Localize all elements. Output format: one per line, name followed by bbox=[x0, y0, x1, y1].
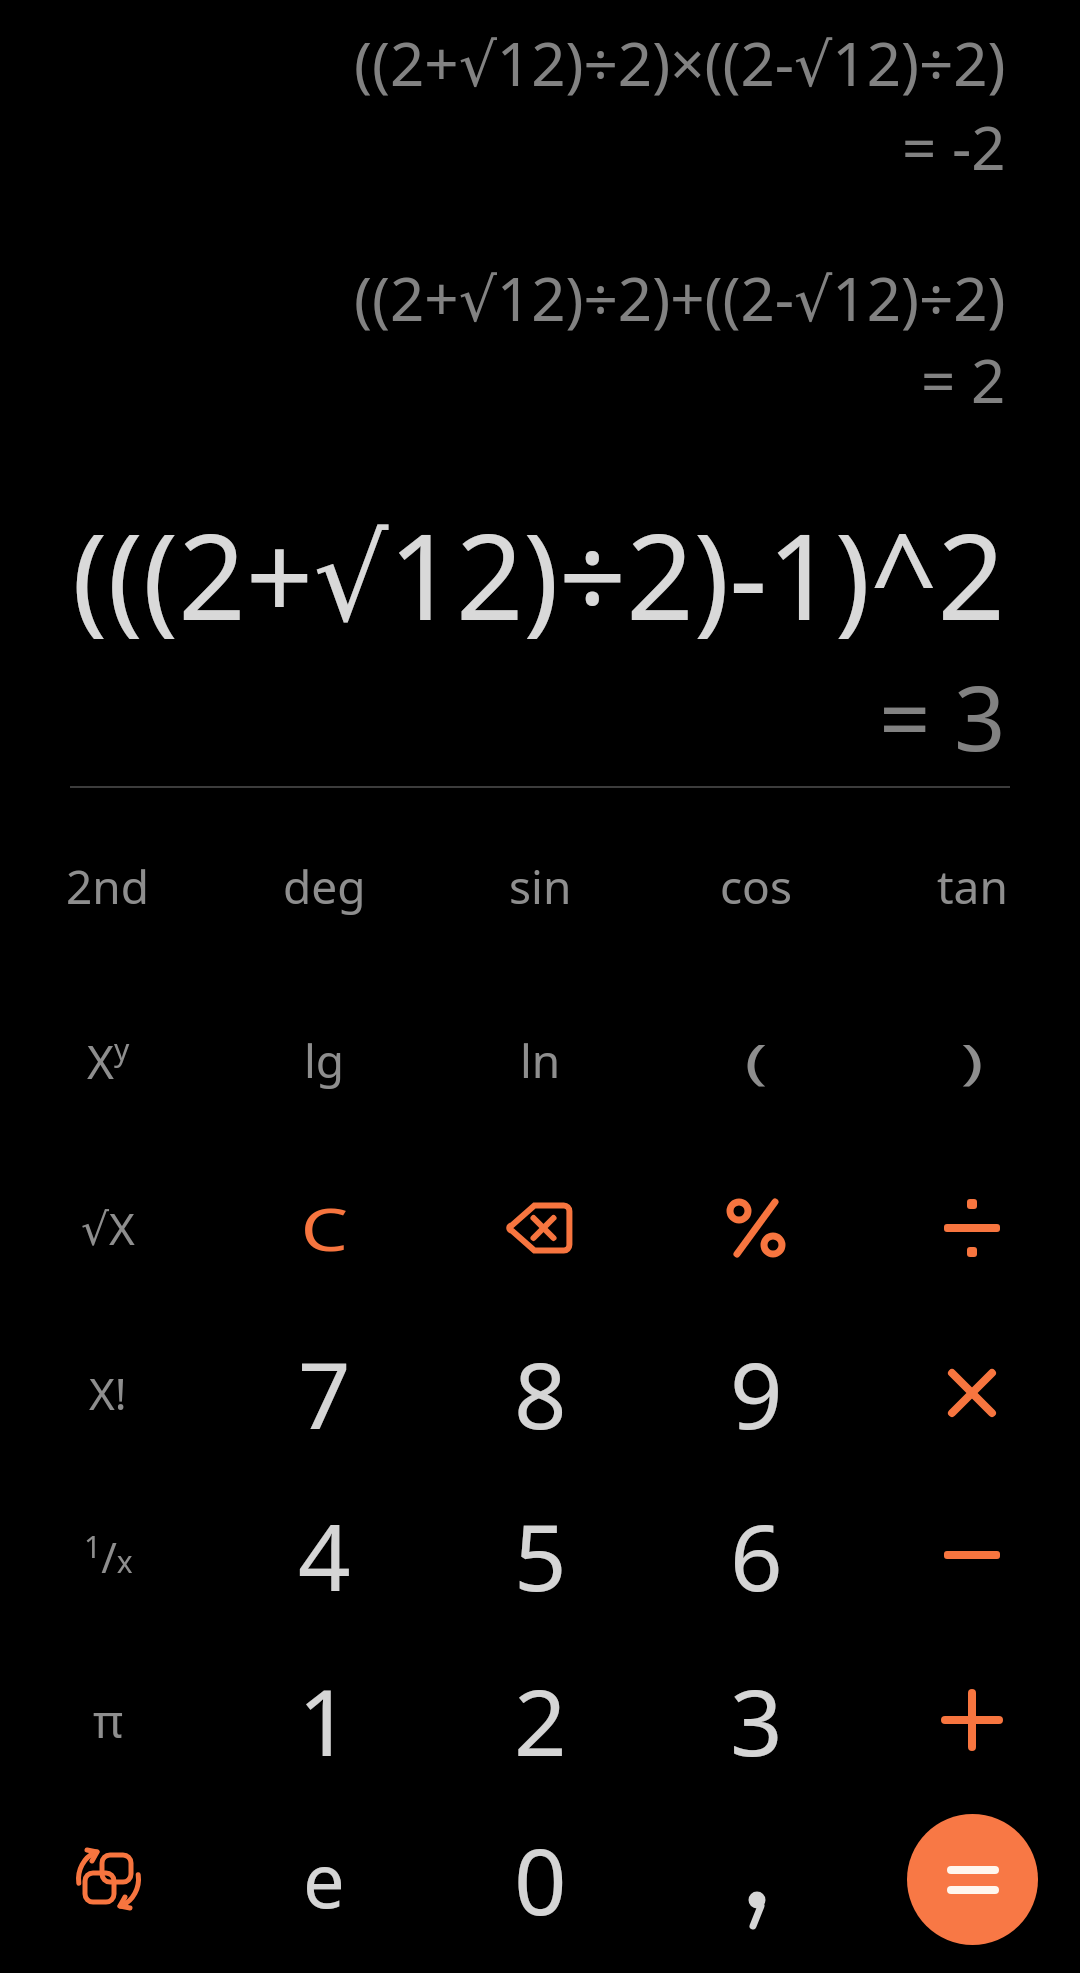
staticText: C bbox=[300, 1189, 349, 1268]
staticText: 6 bbox=[730, 1493, 783, 1618]
button[interactable]: tan bbox=[864, 802, 1080, 970]
staticText: 2 bbox=[514, 1658, 567, 1783]
staticText: ( bbox=[744, 1028, 768, 1093]
staticText: (((2+√12)÷2)-1)^2 bbox=[72, 494, 1006, 655]
button[interactable]: 3 bbox=[648, 1636, 864, 1804]
staticText: 1 bbox=[298, 1658, 351, 1783]
button[interactable]: e bbox=[216, 1795, 432, 1963]
staticText: 7 bbox=[298, 1331, 351, 1456]
button[interactable]: ) bbox=[864, 976, 1080, 1144]
button[interactable] bbox=[864, 1144, 1080, 1312]
staticText: 9 bbox=[730, 1331, 783, 1456]
button[interactable]: Xy bbox=[0, 976, 216, 1144]
button[interactable]: 2 bbox=[432, 1636, 648, 1804]
button[interactable]: 7 bbox=[216, 1309, 432, 1477]
staticText: ln bbox=[520, 1029, 561, 1092]
staticText: tan bbox=[937, 855, 1008, 918]
staticText: cos bbox=[720, 855, 792, 918]
button[interactable]: π bbox=[0, 1636, 216, 1804]
button[interactable]: 2nd bbox=[0, 802, 216, 970]
button[interactable] bbox=[0, 1795, 216, 1963]
button[interactable]: 9 bbox=[648, 1309, 864, 1477]
staticText: 3 bbox=[730, 1658, 783, 1783]
staticText: ) bbox=[960, 1028, 984, 1093]
button[interactable] bbox=[864, 1309, 1080, 1477]
staticText: 4 bbox=[298, 1493, 351, 1618]
staticText: = -2 bbox=[902, 106, 1006, 188]
staticText: ((2+√12)÷2)×((2-√12)÷2) bbox=[354, 22, 1006, 104]
button[interactable] bbox=[648, 1144, 864, 1312]
button[interactable] bbox=[907, 1814, 1038, 1945]
staticText: sin bbox=[509, 855, 572, 918]
button[interactable]: lg bbox=[216, 976, 432, 1144]
staticText: Xy bbox=[87, 1029, 130, 1092]
button[interactable] bbox=[864, 1795, 1080, 1963]
button[interactable]: 4 bbox=[216, 1471, 432, 1639]
button[interactable]: cos bbox=[648, 802, 864, 970]
button[interactable]: deg bbox=[216, 802, 432, 970]
button[interactable]: √X bbox=[0, 1144, 216, 1312]
button[interactable] bbox=[648, 1795, 864, 1963]
button[interactable]: ( bbox=[648, 976, 864, 1144]
staticText: π bbox=[93, 1689, 124, 1752]
staticText: lg bbox=[304, 1029, 345, 1092]
button[interactable] bbox=[864, 1636, 1080, 1804]
staticText: 5 bbox=[514, 1493, 567, 1618]
staticText: = 3 bbox=[879, 655, 1006, 778]
button[interactable] bbox=[432, 1144, 648, 1312]
staticText: 2nd bbox=[66, 855, 150, 918]
button[interactable]: sin bbox=[432, 802, 648, 970]
button[interactable]: 1 bbox=[216, 1636, 432, 1804]
staticText: 8 bbox=[514, 1331, 567, 1456]
button[interactable]: X! bbox=[0, 1309, 216, 1477]
button[interactable]: C bbox=[216, 1144, 432, 1312]
button[interactable]: 1/x bbox=[0, 1471, 216, 1639]
staticText: 1/x bbox=[84, 1526, 133, 1585]
staticText: ((2+√12)÷2)+((2-√12)÷2) bbox=[354, 257, 1006, 339]
staticText: 0 bbox=[514, 1817, 567, 1942]
button[interactable]: 8 bbox=[432, 1309, 648, 1477]
staticText: deg bbox=[283, 855, 366, 918]
button[interactable]: ln bbox=[432, 976, 648, 1144]
staticText: √X bbox=[81, 1198, 135, 1258]
button[interactable]: 0 bbox=[432, 1795, 648, 1963]
staticText: e bbox=[303, 1829, 345, 1930]
staticText: = 2 bbox=[921, 339, 1006, 421]
button[interactable] bbox=[864, 1471, 1080, 1639]
staticText: X! bbox=[89, 1363, 127, 1423]
button[interactable]: 5 bbox=[432, 1471, 648, 1639]
button[interactable]: 6 bbox=[648, 1471, 864, 1639]
